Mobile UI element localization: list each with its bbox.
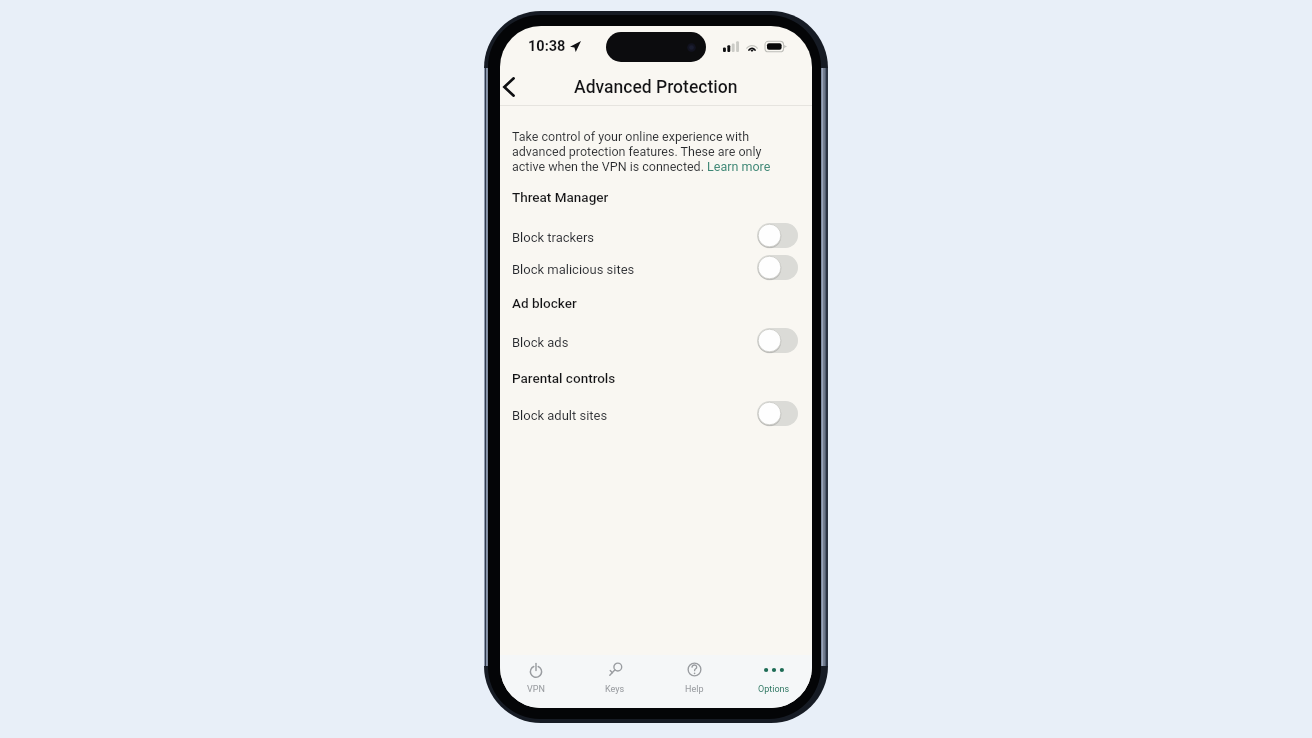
button[interactable]: VPN — [500, 655, 575, 708]
button[interactable]: Back — [500, 68, 527, 105]
staticText: Parental controls — [512, 370, 616, 386]
staticText: Options — [758, 684, 790, 695]
staticText: Advanced Protection — [574, 77, 738, 98]
button[interactable]: Options — [735, 655, 812, 708]
button[interactable]: Block malicious sites — [500, 251, 812, 283]
button[interactable] — [705, 159, 770, 174]
button[interactable]: Block adult sites — [500, 397, 812, 429]
staticText: Ad blocker — [512, 295, 577, 311]
staticText: Block ads — [512, 335, 569, 350]
staticText: Block adult sites — [512, 408, 608, 423]
staticText: VPN — [527, 684, 545, 695]
staticText: Help — [685, 684, 704, 695]
button[interactable]: Help — [655, 655, 733, 708]
staticText: Take control of your online experience w… — [512, 129, 794, 174]
staticText: 10:38 — [528, 38, 566, 55]
button[interactable]: Keys — [576, 655, 654, 708]
staticText: Block malicious sites — [512, 262, 635, 277]
button[interactable]: Block trackers — [500, 219, 812, 251]
staticText: Threat Manager — [512, 189, 609, 205]
button[interactable]: Block ads — [500, 324, 812, 356]
staticText: Keys — [605, 684, 625, 695]
staticText: Block trackers — [512, 230, 595, 245]
